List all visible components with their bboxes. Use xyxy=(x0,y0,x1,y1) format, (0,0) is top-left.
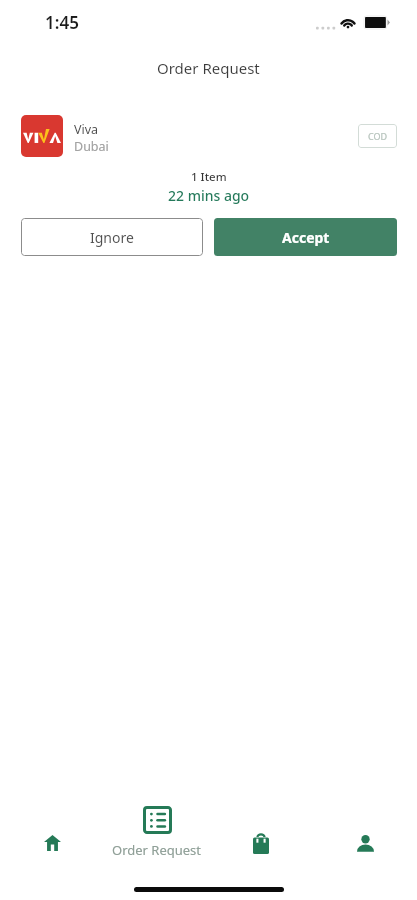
staticText: COD xyxy=(368,130,388,142)
button[interactable]: Ignore xyxy=(21,218,203,256)
staticText: Order Request xyxy=(157,58,260,78)
staticText: Order Request xyxy=(112,841,202,859)
button[interactable]: Order Request xyxy=(105,790,209,859)
button[interactable]: Profile xyxy=(313,790,417,852)
button[interactable]: Home xyxy=(0,790,105,851)
staticText: Accept xyxy=(282,228,330,247)
staticText: 1 Item xyxy=(191,169,227,185)
button[interactable]: COD xyxy=(358,124,397,148)
staticText: Viva xyxy=(74,121,99,138)
staticText: 1:45 xyxy=(45,11,79,34)
button[interactable]: Orders xyxy=(209,790,313,854)
staticText: Ignore xyxy=(90,228,134,247)
staticText: 22 mins ago xyxy=(168,186,250,205)
button[interactable]: Accept xyxy=(214,218,397,256)
staticText: Dubai xyxy=(74,138,109,155)
